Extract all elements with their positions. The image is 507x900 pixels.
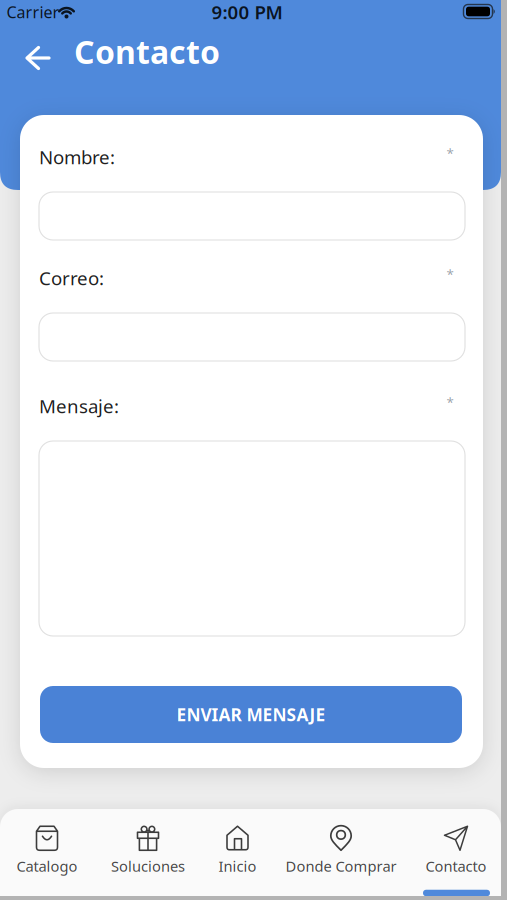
- staticText: *: [446, 144, 453, 162]
- button[interactable]: Catalogo: [0, 818, 94, 882]
- button[interactable]: Inicio: [197, 818, 277, 882]
- button[interactable]: Donde Comprar: [279, 818, 403, 882]
- button[interactable]: Nombre: [39, 192, 465, 240]
- button[interactable]: Contacto: [411, 818, 501, 882]
- staticText: Nombre:: [39, 145, 115, 169]
- button[interactable]: Correo: [39, 313, 465, 361]
- button[interactable]: Soluciones: [99, 818, 197, 882]
- staticText: ENVIAR MENSAJE: [176, 703, 325, 726]
- button[interactable]: ENVIAR MENSAJE: [40, 686, 462, 743]
- staticText: Correo:: [39, 266, 104, 290]
- staticText: Soluciones: [111, 856, 185, 876]
- staticText: *: [446, 393, 453, 411]
- staticText: Mensaje:: [39, 394, 119, 418]
- staticText: *: [446, 265, 453, 283]
- staticText: Donde Comprar: [285, 856, 396, 876]
- staticText: 9:00 PM: [211, 0, 282, 24]
- staticText: Contacto: [74, 30, 220, 73]
- staticText: Catalogo: [16, 856, 77, 876]
- staticText: Carrier: [6, 1, 59, 23]
- staticText: Inicio: [218, 856, 256, 876]
- staticText: Contacto: [425, 856, 486, 876]
- button[interactable]: Back: [27, 47, 49, 69]
